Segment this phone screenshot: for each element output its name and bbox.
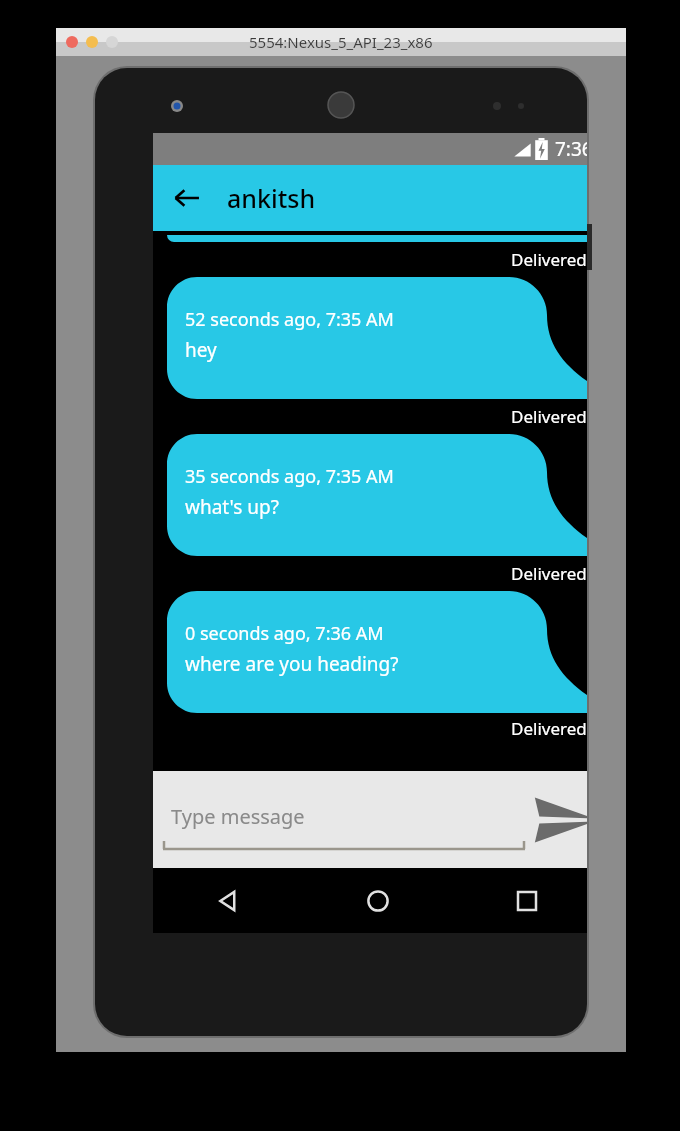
staticText: 5554:Nexus_5_API_23_x86 bbox=[249, 32, 433, 52]
staticText: 0 seconds ago, 7:36 AM bbox=[185, 621, 384, 646]
staticText: hey bbox=[185, 337, 217, 363]
button[interactable]: Recent apps bbox=[452, 868, 587, 933]
staticText: Delivered bbox=[511, 562, 587, 585]
staticText: Delivered bbox=[511, 405, 587, 428]
staticText: what's up? bbox=[185, 494, 279, 520]
staticText: where are you heading? bbox=[185, 651, 399, 677]
button[interactable]: 52 seconds ago, 7:35 AM bbox=[167, 277, 587, 399]
button[interactable]: Back bbox=[153, 868, 303, 933]
button[interactable]: 35 seconds ago, 7:35 AM bbox=[167, 434, 587, 556]
staticText: Delivered bbox=[511, 248, 587, 271]
staticText: ankitsh bbox=[227, 181, 316, 215]
staticText: Type message bbox=[171, 803, 305, 830]
button[interactable]: Type message bbox=[153, 771, 525, 868]
staticText: 35 seconds ago, 7:35 AM bbox=[185, 464, 394, 489]
button[interactable]: 0 seconds ago, 7:36 AM bbox=[167, 591, 587, 713]
button[interactable]: Back bbox=[163, 174, 211, 222]
button[interactable]: Home bbox=[303, 868, 452, 933]
staticText: 7:36 bbox=[555, 136, 587, 162]
staticText: Delivered bbox=[511, 717, 587, 740]
staticText: 52 seconds ago, 7:35 AM bbox=[185, 307, 394, 332]
button[interactable]: Send bbox=[525, 771, 587, 868]
